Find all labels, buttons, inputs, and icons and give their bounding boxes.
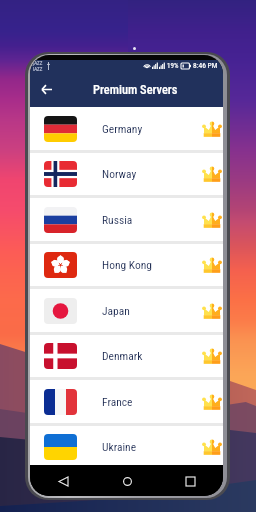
button[interactable]: Russia bbox=[30, 198, 223, 241]
button[interactable]: Hong Kong bbox=[30, 243, 223, 286]
staticText: Japan bbox=[102, 304, 130, 317]
button[interactable]: Ukraine bbox=[30, 425, 223, 468]
staticText: JAZZ bbox=[33, 60, 43, 66]
button[interactable]: Germany bbox=[30, 107, 223, 150]
button[interactable]: Japan bbox=[30, 289, 223, 332]
staticText: Hong Kong bbox=[102, 258, 152, 271]
button[interactable]: Home bbox=[116, 470, 138, 492]
staticText: Premium Servers bbox=[93, 82, 178, 97]
button[interactable]: Back bbox=[52, 470, 74, 492]
staticText: 8:46 PM bbox=[193, 61, 218, 70]
staticText: JAZZ bbox=[33, 66, 43, 71]
button[interactable]: Recents bbox=[179, 470, 201, 492]
button[interactable]: France bbox=[30, 380, 223, 423]
staticText: 19% bbox=[167, 62, 179, 70]
staticText: Ukraine bbox=[102, 440, 137, 453]
staticText: Germany bbox=[102, 122, 143, 135]
button[interactable]: Denmark bbox=[30, 334, 223, 377]
staticText: France bbox=[102, 395, 133, 408]
staticText: Russia bbox=[102, 213, 133, 226]
button[interactable]: Back bbox=[34, 77, 58, 101]
staticText: Denmark bbox=[102, 349, 143, 362]
staticText: Norway bbox=[102, 167, 137, 180]
button[interactable]: Norway bbox=[30, 152, 223, 195]
